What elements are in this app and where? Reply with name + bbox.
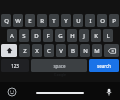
staticText: K [94,32,98,40]
staticText: search [97,63,111,69]
staticText: W [15,17,21,25]
button[interactable]: Voice input [102,85,115,98]
staticText: R [40,17,44,25]
staticText: H [70,32,75,40]
button[interactable]: E [25,14,35,27]
button[interactable]: Q [1,14,11,27]
staticText: G [58,32,63,40]
button[interactable]: S [19,29,29,42]
staticText: Z [23,47,27,55]
staticText: Google [54,72,66,77]
button[interactable]: I [85,14,95,27]
button[interactable]: space [31,59,87,72]
staticText: B [71,47,75,55]
staticText: J [83,32,85,40]
button[interactable]: W [13,14,23,27]
button[interactable]: H [67,29,77,42]
button[interactable]: Z [19,44,30,57]
button[interactable]: Y [61,14,71,27]
staticText: Q [4,17,9,25]
staticText: M [94,47,100,55]
staticText: I [89,17,92,25]
button[interactable]: Backspace [104,44,119,57]
button[interactable]: 123 [1,59,29,72]
button[interactable]: search [89,59,119,72]
button[interactable]: J [79,29,89,42]
button[interactable]: N [80,44,90,57]
button[interactable]: C [44,44,54,57]
button[interactable]: O [97,14,107,27]
button[interactable]: R [37,14,47,27]
staticText: D [34,32,39,40]
button[interactable]: U [73,14,83,27]
button[interactable]: X [32,44,42,57]
button[interactable]: V [56,44,66,57]
staticText: V [59,47,63,55]
staticText: U [76,17,81,25]
button[interactable]: Shift [1,44,17,57]
button[interactable]: Emoji [5,85,18,98]
staticText: O [100,17,105,25]
staticText: A [10,32,14,40]
staticText: S [22,32,26,40]
staticText: C [47,47,51,55]
button[interactable]: T [49,14,59,27]
button[interactable]: A [7,29,17,42]
staticText: L [106,32,110,40]
button[interactable]: M [92,44,102,57]
staticText: X [35,47,39,55]
staticText: T [52,17,56,25]
staticText: N [83,47,88,55]
staticText: Y [64,17,68,25]
staticText: E [28,17,32,25]
button[interactable]: P [109,14,119,27]
button[interactable]: G [55,29,65,42]
staticText: F [46,32,50,40]
staticText: space [53,63,66,69]
staticText: 123 [11,63,19,69]
button[interactable]: D [31,29,41,42]
button[interactable]: F [43,29,53,42]
button[interactable]: L [103,29,113,42]
button[interactable]: K [91,29,101,42]
button[interactable]: B [68,44,78,57]
staticText: P [112,17,116,25]
